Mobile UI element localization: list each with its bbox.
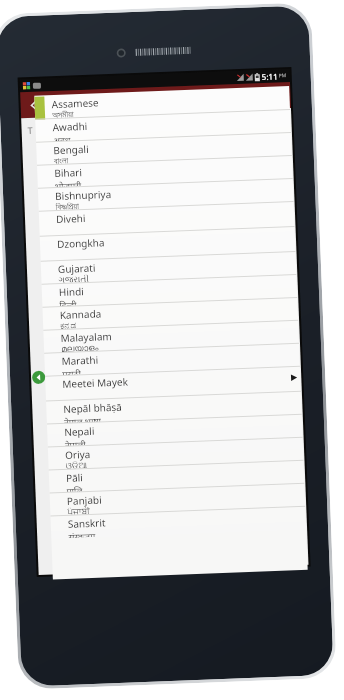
staticText: Awadhi (52, 119, 88, 134)
staticText: Panjabi (67, 492, 102, 508)
button[interactable]: Navigate up (24, 95, 43, 114)
staticText: മലയാളം (61, 343, 99, 352)
staticText: ગુજરાતી (58, 275, 89, 283)
staticText: Dzongkha (57, 235, 105, 251)
staticText: Kannada (59, 306, 102, 322)
button[interactable]: Next (288, 372, 299, 383)
staticText: Bishnupriya (55, 187, 111, 203)
button[interactable]: Malayalam (43, 320, 299, 353)
staticText: বিষ্ণুপ্রিয়া (55, 202, 80, 210)
button[interactable]: Sanskrit (50, 506, 306, 538)
staticText: मराठी (62, 367, 81, 375)
button[interactable]: Dzongkha (40, 226, 295, 261)
button[interactable]: Marathi (44, 343, 300, 376)
button[interactable]: Nepali (47, 414, 303, 447)
staticText: नेपाल भाषा (64, 414, 102, 423)
staticText: Gujarati (58, 261, 96, 276)
staticText: संस्कृतम् (68, 530, 96, 538)
staticText: Assamese (51, 95, 99, 111)
staticText: भोजपुरी (55, 179, 82, 187)
staticText: বাংলা (54, 157, 69, 164)
staticText: Nepali (64, 424, 95, 439)
staticText: ଓଡ଼ିଆ (65, 461, 88, 469)
staticText: PM (279, 72, 287, 79)
staticText: Oriya (65, 447, 91, 462)
button[interactable]: Assamese (34, 86, 290, 119)
staticText: अवध (53, 133, 71, 141)
staticText: ਪੰਜਾਬੀ (67, 507, 90, 515)
button[interactable]: Bihari (37, 155, 293, 188)
button[interactable]: Kannada (42, 297, 298, 330)
button[interactable]: Previous (32, 371, 45, 384)
button[interactable]: Oriya (48, 437, 303, 470)
staticText: Divehi (56, 211, 86, 226)
staticText: Meetei Mayek (62, 374, 129, 391)
staticText: हिन्दी (59, 298, 77, 306)
staticText: नेपाली (64, 438, 86, 446)
button[interactable]: Awadhi (35, 109, 291, 142)
button[interactable]: Bengali (36, 132, 292, 165)
button[interactable]: Panjabi (49, 483, 305, 516)
staticText: Marathi (61, 353, 99, 368)
staticText: Malayalam (60, 329, 113, 345)
button[interactable]: Pāli (49, 460, 304, 493)
staticText: Hindi (59, 284, 84, 299)
button[interactable]: Nepāl bhāṣā (46, 391, 302, 424)
button[interactable]: Divehi (39, 201, 294, 236)
staticText: 5:11 (261, 70, 278, 82)
staticText: Bihari (54, 165, 82, 180)
staticText: অসমীয়া (52, 110, 74, 118)
button[interactable]: Hindi (41, 274, 297, 307)
staticText: Sanskrit (67, 515, 106, 531)
staticText: Pāli (66, 470, 83, 485)
button[interactable]: Meetei Mayek (45, 366, 301, 401)
staticText: ಕನ್ನಡ (60, 321, 77, 329)
staticText: T (27, 124, 34, 136)
button[interactable]: Gujarati (41, 251, 296, 284)
staticText: पालि (66, 484, 83, 492)
staticText: Bengali (53, 142, 90, 157)
staticText: Nepāl bhāṣā (63, 400, 123, 416)
button[interactable]: Bishnupriya (38, 178, 293, 211)
